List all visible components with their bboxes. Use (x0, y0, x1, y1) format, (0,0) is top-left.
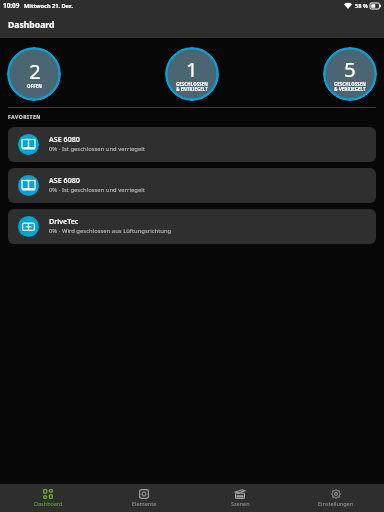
staticText: GESCHLOSSEN & VERRIEGELT (334, 81, 366, 92)
button[interactable]: Dashboard (0, 484, 96, 512)
button[interactable]: Elemente (96, 484, 192, 512)
button[interactable]: DriveTec (8, 209, 376, 244)
staticText: 10:09 (3, 1, 20, 10)
staticText: Szenen (231, 500, 250, 507)
staticText: 0% · Wird geschlossen aus Lüftungsrichtu… (49, 227, 172, 235)
staticText: Elemente (132, 500, 157, 507)
button[interactable]: 5 (323, 47, 377, 101)
staticText: DriveTec (49, 216, 79, 226)
button[interactable]: ASE 6080 (8, 168, 376, 203)
staticText: GESCHLOSSEN & ENTRIEGELT (176, 81, 208, 92)
staticText: OFFEN (27, 83, 42, 89)
button[interactable]: Einstellungen (288, 484, 384, 512)
staticText: FAVORITEN (8, 114, 41, 121)
staticText: 0% · Ist geschlossen und verriegelt (49, 186, 145, 194)
staticText: 0% · Ist geschlossen und verriegelt (49, 145, 145, 153)
staticText: 5 (344, 55, 356, 83)
staticText: Dashboard (8, 19, 55, 31)
staticText: 2 (29, 57, 41, 85)
staticText: ASE 6080 (49, 134, 80, 144)
staticText: Mittwoch 21. Dez. (24, 2, 74, 10)
button[interactable]: Szenen (192, 484, 288, 512)
staticText: Einstellungen (318, 500, 354, 507)
staticText: 58 % (355, 2, 368, 10)
staticText: Dashboard (34, 500, 63, 507)
staticText: ASE 6080 (49, 175, 80, 185)
button[interactable]: 2 (7, 47, 61, 101)
button[interactable]: 1 (165, 47, 219, 101)
button[interactable]: ASE 6080 (8, 127, 376, 162)
staticText: 1 (186, 55, 198, 83)
